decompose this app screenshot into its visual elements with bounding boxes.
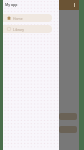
- staticText: Home: [13, 16, 23, 21]
- staticText: My app: [5, 2, 18, 7]
- button[interactable]: Home: [3, 14, 52, 22]
- button[interactable]: Library: [3, 25, 52, 33]
- button[interactable]: [59, 126, 77, 133]
- button[interactable]: [59, 113, 77, 120]
- staticText: Library: [13, 27, 25, 32]
- other: Library: [7, 27, 11, 31]
- other: Home: [7, 16, 11, 20]
